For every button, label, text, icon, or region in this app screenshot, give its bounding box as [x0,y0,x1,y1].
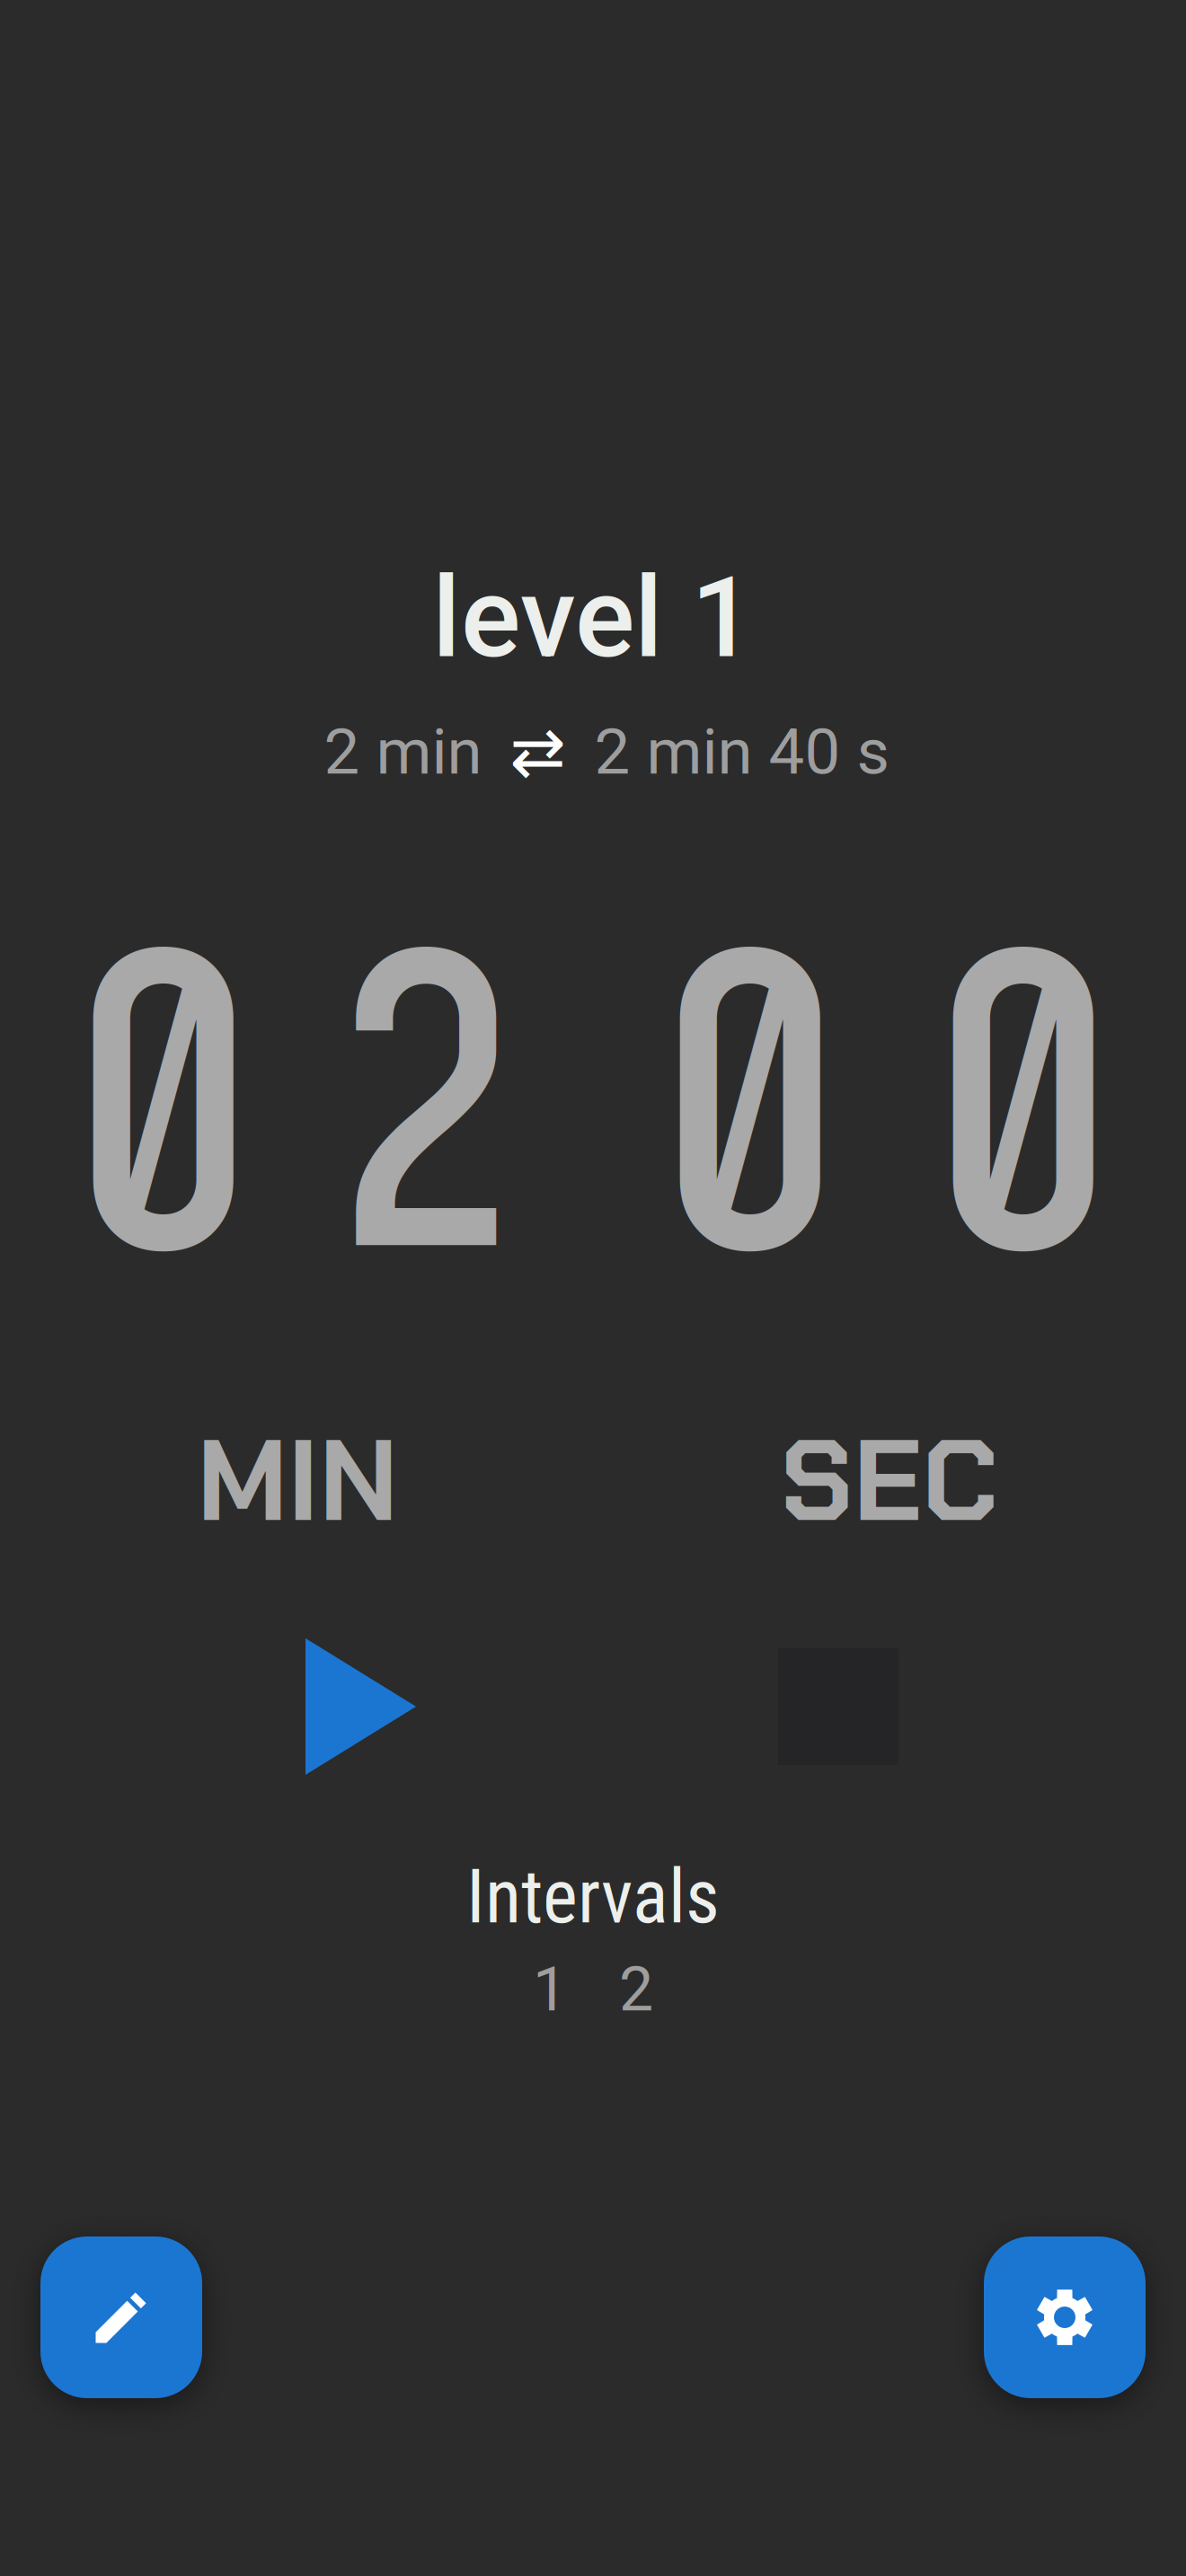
staticText: 1 [533,1954,567,2025]
button[interactable]: 1 [535,1958,565,2021]
staticText: ⇄ [510,713,566,791]
button[interactable]: MIN [2,1427,593,1535]
staticText: 0 [66,860,260,1402]
staticText: 0 [926,860,1120,1402]
staticText: 2 [340,860,514,1402]
staticText: 0 [653,860,846,1402]
staticText: 2 [619,1954,653,2025]
button[interactable]: SEC [593,1427,1184,1535]
button[interactable]: Intervals [404,1857,782,1937]
staticText: Intervals [466,1853,720,1941]
button[interactable]: 00 [653,860,1120,1402]
button[interactable]: Settings [984,2236,1146,2398]
staticText: 2 min [324,715,482,789]
staticText: 2 min 40 s [594,715,889,789]
staticText: level 1 [432,553,754,683]
button[interactable]: Start [305,1638,416,1775]
staticText: SEC [780,1407,997,1555]
button[interactable]: 2 [621,1958,651,2021]
button[interactable]: 02 [66,860,514,1402]
staticText: MIN [197,1407,398,1555]
button[interactable]: Edit [40,2236,202,2398]
